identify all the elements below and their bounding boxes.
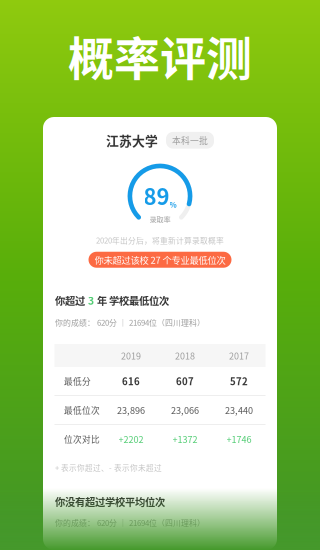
staticText: 2019 [121,349,141,362]
staticText: 2018 [175,349,195,362]
staticText: 23,440 [225,403,253,416]
staticText: 你的成绩： 620分 ｜ 21694位（四川理科） [55,317,205,328]
staticText: 位次对比 [64,433,100,445]
staticText: 年 学校最低位次 [97,293,169,308]
staticText: 616 [122,374,140,388]
staticText: 89 [143,179,169,211]
staticText: 3 [88,293,94,308]
staticText: 2020年出分后，将重新计算录取概率 [96,234,224,246]
staticText: 江苏大学 [106,131,158,149]
staticText: 概率评测 [68,22,252,89]
staticText: +1372 [172,432,197,445]
staticText: 23,896 [117,403,145,416]
staticText: 最低位次 [64,404,100,416]
staticText: 2017 [229,349,249,362]
staticText: 你未超过该校 27 个专业最低位次 [94,253,225,266]
staticText: 本科一批 [172,134,208,147]
staticText: 最低分 [64,375,91,387]
staticText: 你没有超过学校平均位次 [55,494,165,509]
staticText: 你的成绩： 620分 ｜ 21694位（四川理科） [55,517,205,528]
staticText: 572 [230,374,248,388]
staticText: 录取率 [149,214,170,224]
staticText: + 表示你超过、- 表示你未超过 [55,462,162,473]
staticText: 23,066 [171,403,199,416]
staticText: 你超过 [55,293,85,308]
staticText: % [169,199,176,210]
staticText: +1746 [226,432,251,445]
staticText: +2202 [118,432,143,445]
staticText: 607 [176,374,194,388]
